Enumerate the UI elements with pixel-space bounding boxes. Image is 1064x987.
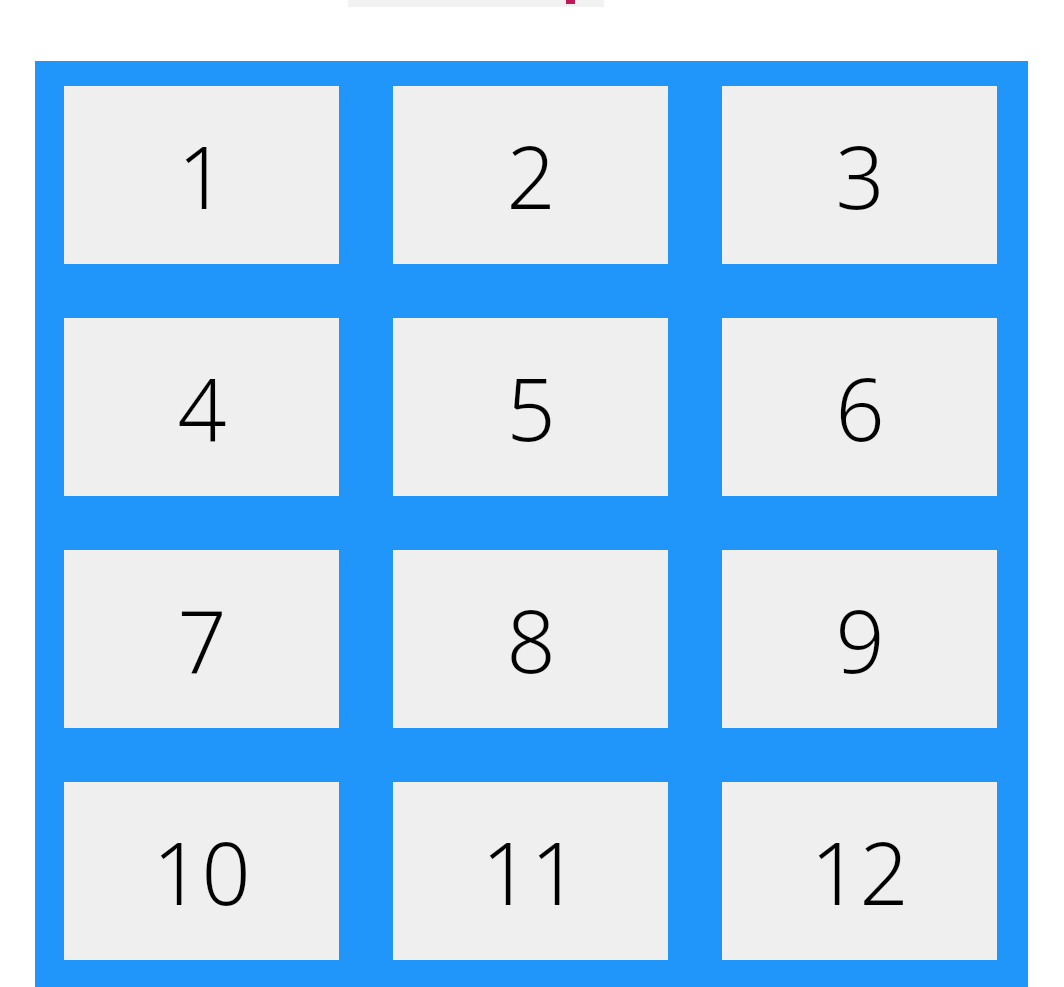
button[interactable]: 6 [722,318,997,496]
button[interactable]: 3 [722,86,997,264]
staticText: 6 [835,349,885,466]
button[interactable]: 11 [393,782,668,960]
button[interactable]: 10 [64,782,339,960]
staticText: 8 [506,581,556,698]
button[interactable]: 5 [393,318,668,496]
staticText: 10 [152,813,251,930]
staticText: 12 [810,813,909,930]
staticText: 7 [177,581,227,698]
staticText: 9 [835,581,885,698]
button[interactable]: 2 [393,86,668,264]
staticText: 11 [481,813,580,930]
staticText: 3 [835,117,885,234]
staticText: 4 [177,349,227,466]
button[interactable]: 7 [64,550,339,728]
button[interactable]: 1 [64,86,339,264]
staticText: 5 [506,349,556,466]
staticText: 1 [177,117,227,234]
staticText: 2 [506,117,556,234]
button[interactable]: 4 [64,318,339,496]
button[interactable]: 12 [722,782,997,960]
button[interactable]: 8 [393,550,668,728]
button[interactable]: 9 [722,550,997,728]
